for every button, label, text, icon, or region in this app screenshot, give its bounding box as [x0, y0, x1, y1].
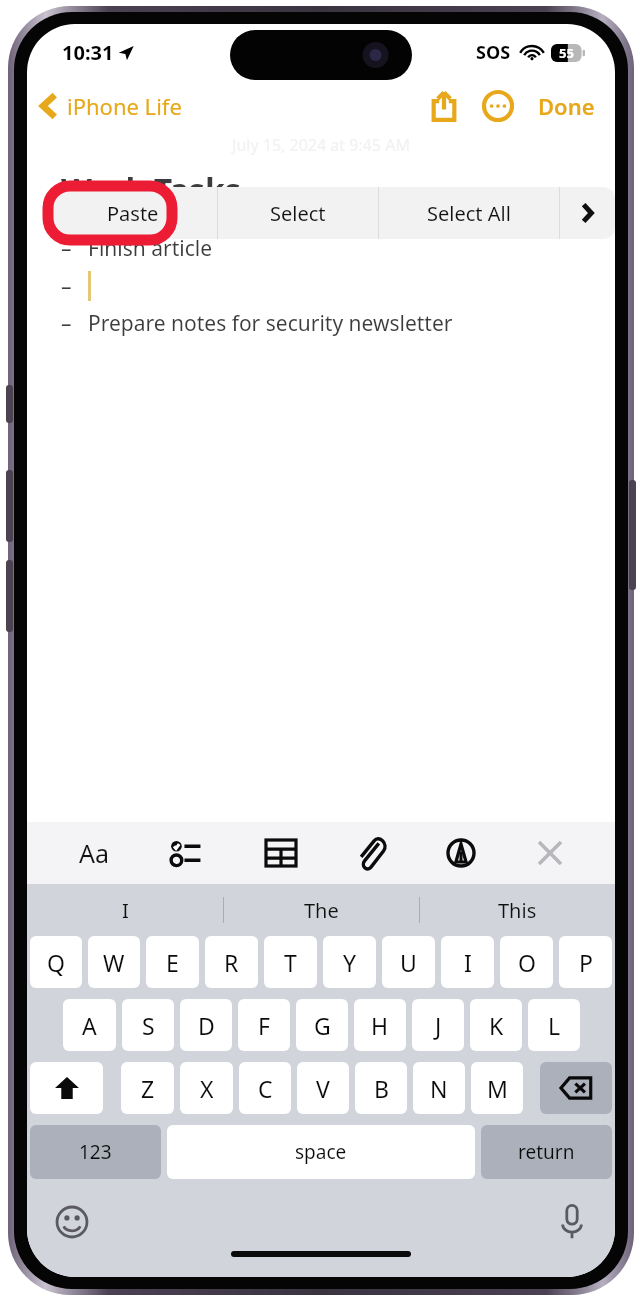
staticText: Select [270, 200, 326, 227]
staticText: Finish article [88, 234, 213, 263]
button[interactable]: Select All [379, 187, 559, 239]
button[interactable]: X [180, 1062, 233, 1114]
staticText: X [200, 1073, 214, 1104]
button[interactable]: Emoji [49, 1199, 95, 1245]
staticText: S [142, 1010, 155, 1041]
staticText: L [548, 1010, 561, 1041]
staticText: SOS [476, 40, 511, 65]
button[interactable]: Text format [69, 826, 120, 880]
staticText: O [518, 947, 536, 978]
staticText: I [464, 947, 472, 978]
staticText: D [198, 1010, 215, 1041]
button[interactable]: 123 [30, 1125, 161, 1179]
button[interactable]: Backspace [540, 1062, 612, 1114]
button[interactable]: K [470, 999, 522, 1051]
button[interactable]: H [354, 999, 406, 1051]
staticText: V [316, 1073, 330, 1104]
button[interactable]: A [63, 999, 116, 1051]
button[interactable]: Paste [49, 187, 217, 239]
button[interactable]: More menu items [560, 187, 615, 239]
staticText: R [224, 947, 239, 978]
staticText: 55 [559, 44, 574, 62]
staticText: M [487, 1073, 508, 1104]
button[interactable]: Checklist [161, 829, 213, 877]
button[interactable]: M [471, 1062, 523, 1114]
button[interactable]: I [441, 936, 494, 988]
staticText: W [103, 947, 125, 978]
button[interactable]: T [264, 936, 317, 988]
staticText: Y [343, 947, 357, 978]
staticText: – [61, 272, 72, 301]
button[interactable]: Attach file [348, 827, 394, 879]
staticText: – [61, 234, 72, 263]
staticText: The [304, 897, 339, 924]
button[interactable]: S [122, 999, 174, 1051]
button[interactable]: F [238, 999, 290, 1051]
staticText: U [400, 947, 417, 978]
button[interactable]: O [500, 936, 553, 988]
staticText: B [374, 1073, 389, 1104]
button[interactable]: Select [218, 187, 378, 239]
staticText: Z [141, 1073, 155, 1104]
staticText: Paste [107, 200, 159, 227]
staticText: This [498, 897, 537, 924]
button[interactable]: Shift [30, 1062, 103, 1114]
button[interactable]: Done [532, 85, 601, 127]
staticText: H [371, 1010, 389, 1041]
staticText: C [258, 1073, 273, 1104]
button[interactable]: E [146, 936, 199, 988]
staticText: E [166, 947, 179, 978]
button[interactable]: Table [255, 829, 307, 877]
staticText: F [258, 1010, 270, 1041]
staticText: – [61, 309, 72, 338]
button[interactable]: B [355, 1062, 407, 1114]
button[interactable]: Z [121, 1062, 174, 1114]
staticText: Select All [427, 200, 511, 227]
button[interactable]: space [167, 1125, 475, 1179]
button[interactable]: Close toolbar [527, 830, 573, 876]
staticText: Work Tasks [61, 168, 241, 212]
staticText: return [518, 1139, 575, 1165]
button[interactable]: I [27, 884, 223, 936]
button[interactable]: return [481, 1125, 612, 1179]
button[interactable]: U [382, 936, 435, 988]
staticText: space [295, 1139, 347, 1165]
button[interactable]: Share [424, 83, 464, 129]
staticText: T [284, 947, 297, 978]
staticText: K [489, 1010, 504, 1041]
button[interactable]: Dictate [553, 1198, 591, 1246]
button[interactable]: More options [476, 84, 520, 128]
staticText: iPhone Life [67, 91, 182, 121]
button[interactable]: The [224, 884, 419, 936]
button[interactable]: W [88, 936, 140, 988]
staticText: A [82, 1010, 97, 1041]
staticText: P [579, 947, 593, 978]
staticText: 123 [79, 1139, 112, 1165]
button[interactable]: This [420, 884, 615, 936]
button[interactable]: G [296, 999, 348, 1051]
staticText: Q [47, 947, 65, 978]
button[interactable]: Q [30, 936, 82, 988]
staticText: J [435, 1010, 442, 1041]
staticText: Prepare notes for security newsletter [88, 309, 453, 338]
staticText: Aa [79, 836, 110, 870]
button[interactable]: L [528, 999, 580, 1051]
staticText: N [430, 1073, 448, 1104]
staticText: G [314, 1010, 331, 1041]
button[interactable]: C [239, 1062, 291, 1114]
button[interactable]: D [180, 999, 232, 1051]
button[interactable]: R [205, 936, 258, 988]
button[interactable]: iPhone Life [27, 87, 190, 125]
button[interactable]: Markup [436, 828, 486, 878]
button[interactable]: P [559, 936, 612, 988]
button[interactable]: J [412, 999, 464, 1051]
button[interactable]: N [413, 1062, 465, 1114]
staticText: 10:31 [62, 39, 114, 66]
button[interactable]: Y [323, 936, 376, 988]
button[interactable]: V [297, 1062, 349, 1114]
staticText: I [122, 897, 129, 924]
staticText: Done [538, 91, 595, 121]
